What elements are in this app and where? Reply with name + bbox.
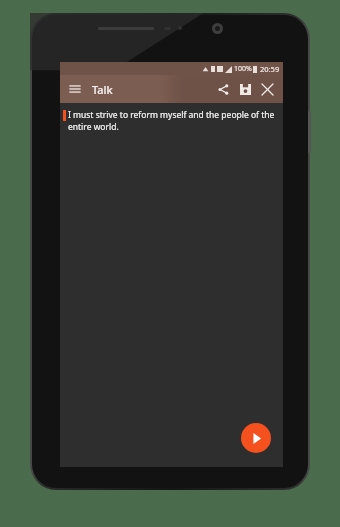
button[interactable]: Menu (66, 80, 84, 98)
button[interactable]: Share (212, 78, 234, 100)
staticText: 100% (234, 64, 252, 74)
button[interactable]: Save (234, 78, 256, 100)
staticText: I must strive to reform myself and the p… (68, 109, 275, 133)
button[interactable]: Play (241, 423, 271, 453)
staticText: Talk (92, 82, 113, 97)
staticText: 20:59 (260, 64, 280, 74)
button[interactable]: Close (256, 78, 278, 100)
